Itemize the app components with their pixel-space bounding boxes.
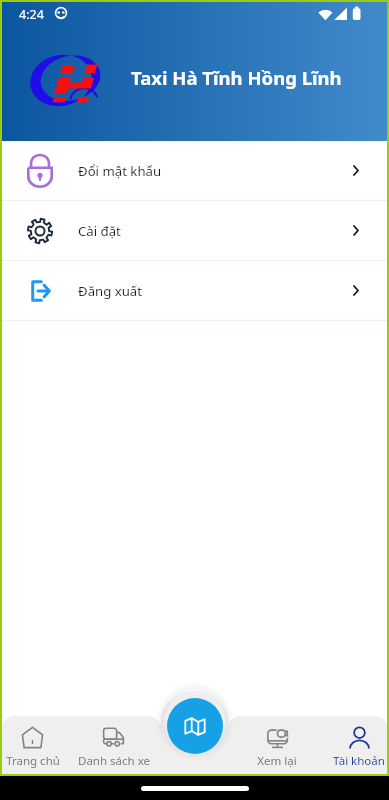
staticText: 4:24 <box>19 6 44 23</box>
staticText: Danh sách xe <box>78 753 150 769</box>
button[interactable]: Map <box>167 698 223 754</box>
staticText: Tài khoản <box>333 753 385 769</box>
staticText: Xem lại <box>257 753 297 769</box>
staticText: Đăng xuất <box>78 282 142 300</box>
staticText: Đổi mật khẩu <box>78 162 162 180</box>
staticText: Trang chủ <box>6 753 60 769</box>
button[interactable]: Danh sách xe <box>73 716 154 774</box>
staticText: Cài đặt <box>78 222 121 240</box>
button[interactable]: Trang chủ <box>0 716 73 774</box>
staticText: Taxi Hà Tĩnh Hồng Lĩnh <box>131 65 342 90</box>
button[interactable]: Đăng xuất <box>2 261 387 320</box>
button[interactable]: Tài khoản <box>318 716 389 774</box>
button[interactable]: Cài đặt <box>2 201 387 260</box>
button[interactable]: Đổi mật khẩu <box>2 141 387 200</box>
button[interactable]: Xem lại <box>236 716 318 774</box>
